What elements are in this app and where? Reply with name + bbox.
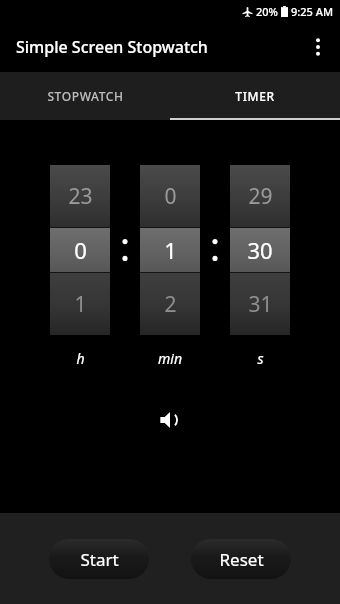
button[interactable]: Sound	[150, 400, 190, 440]
staticText: 31	[248, 290, 273, 319]
staticText: 0	[74, 235, 87, 265]
staticText: 2	[164, 290, 177, 319]
button[interactable]: 0	[140, 165, 200, 335]
button[interactable]: 23	[50, 165, 110, 335]
staticText: Reset	[219, 548, 264, 571]
staticText: 0	[164, 182, 177, 211]
button[interactable]: Start	[49, 539, 149, 579]
button[interactable]: TIMER	[170, 72, 340, 120]
staticText: 30	[247, 235, 273, 265]
staticText: 1	[164, 235, 177, 265]
staticText: 9:25 AM	[291, 4, 334, 19]
staticText: 20%	[256, 4, 278, 19]
staticText: 29	[248, 182, 273, 211]
staticText: TIMER	[235, 88, 275, 104]
button[interactable]: More options	[296, 25, 340, 69]
button[interactable]: STOPWATCH	[0, 72, 170, 120]
staticText: 1	[74, 290, 87, 319]
staticText: min	[158, 349, 182, 368]
staticText: h	[76, 349, 85, 368]
button[interactable]: 29	[230, 165, 290, 335]
staticText: STOPWATCH	[47, 88, 124, 104]
staticText: 23	[68, 182, 93, 211]
staticText: Start	[80, 548, 119, 571]
staticText: s	[257, 349, 264, 368]
button[interactable]: Reset	[191, 539, 291, 579]
staticText: Simple Screen Stopwatch	[16, 36, 208, 58]
